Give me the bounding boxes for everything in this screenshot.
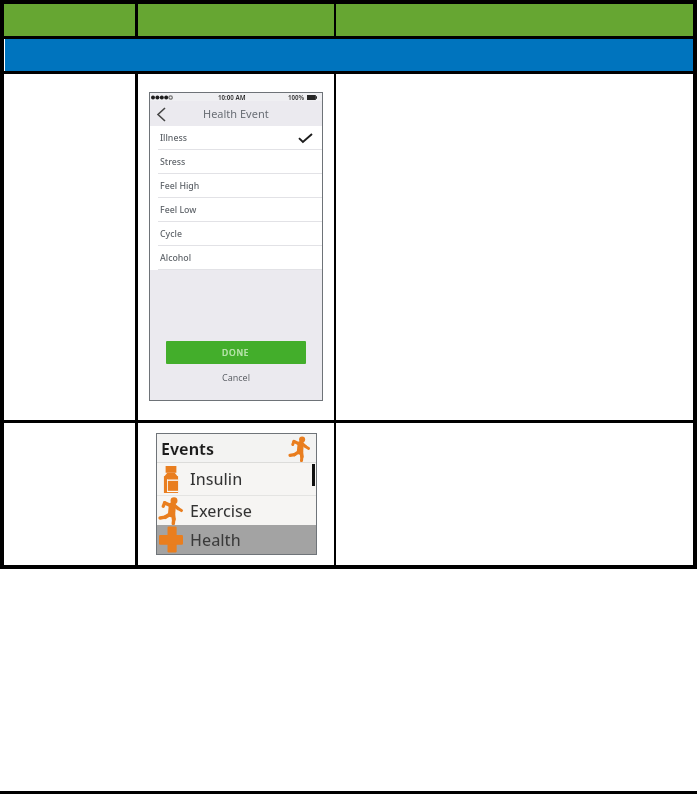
- staticText: Events: [161, 438, 215, 460]
- staticText: 100%: [288, 93, 305, 101]
- button[interactable]: Feel High: [150, 174, 322, 198]
- button[interactable]: Back: [153, 106, 169, 122]
- staticText: Feel High: [160, 180, 200, 192]
- staticText: Alcohol: [160, 252, 192, 264]
- staticText: Cycle: [160, 228, 182, 240]
- button[interactable]: Exercise: [289, 436, 310, 461]
- button[interactable]: Alcohol: [150, 246, 322, 270]
- button[interactable]: DONE: [166, 341, 306, 364]
- staticText: Health Event: [203, 106, 269, 121]
- staticText: Feel Low: [160, 204, 197, 216]
- button[interactable]: Insulin: [157, 463, 316, 495]
- button[interactable]: Feel Low: [150, 198, 322, 222]
- staticText: Exercise: [190, 500, 253, 522]
- button[interactable]: Cycle: [150, 222, 322, 246]
- button[interactable]: Illness: [150, 126, 322, 150]
- staticText: Insulin: [190, 468, 243, 490]
- button[interactable]: Cancel: [222, 371, 251, 383]
- staticText: DONE: [222, 347, 250, 359]
- staticText: Stress: [160, 156, 186, 168]
- button[interactable]: Health: [157, 525, 316, 554]
- staticText: 10:00 AM: [218, 93, 246, 101]
- button[interactable]: Stress: [150, 150, 322, 174]
- staticText: Cancel: [222, 371, 251, 383]
- button[interactable]: Exercise: [157, 496, 316, 525]
- staticText: Health: [190, 529, 241, 551]
- staticText: Illness: [160, 132, 187, 144]
